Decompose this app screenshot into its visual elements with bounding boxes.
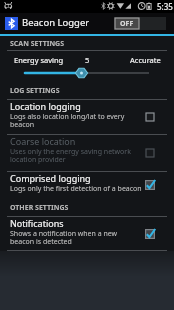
staticText: LOG SETTINGS <box>10 86 60 96</box>
staticText: OTHER SETTINGS <box>10 203 69 213</box>
button[interactable]: Checkbox <box>145 112 155 122</box>
button[interactable]: Comprised logging <box>0 172 174 197</box>
staticText: 5 <box>85 55 90 65</box>
staticText: OFF <box>120 19 134 29</box>
staticText: Uses only the energy saving network loca… <box>10 147 142 164</box>
button[interactable]: Energy saving <box>0 55 174 84</box>
staticText: 5:35 <box>157 1 173 12</box>
staticText: Beacon Logger <box>22 16 90 29</box>
staticText: SCAN SETTINGS <box>10 39 65 49</box>
button[interactable]: Location logging <box>0 100 174 134</box>
staticText: Shows a notification when a new beacon i… <box>10 229 142 246</box>
other: App icon <box>5 17 18 30</box>
button[interactable]: Coarse location <box>0 135 174 171</box>
staticText: Logs also location long/lat to every bea… <box>10 112 142 129</box>
staticText: Notifications <box>10 217 64 229</box>
staticText: Coarse location <box>10 135 76 147</box>
button[interactable]: Checkbox <box>145 148 155 158</box>
staticText: Logs only the first detection of a beaco… <box>10 184 142 194</box>
button[interactable]: Toggle logger <box>114 17 166 30</box>
button[interactable]: Checkbox <box>145 180 155 190</box>
staticText: Energy saving <box>14 55 64 65</box>
staticText: Location logging <box>10 100 81 112</box>
staticText: Accurate <box>130 55 161 65</box>
button[interactable]: Notifications <box>0 217 174 250</box>
button[interactable]: Checkbox <box>145 229 155 239</box>
staticText: Comprised logging <box>10 172 91 184</box>
